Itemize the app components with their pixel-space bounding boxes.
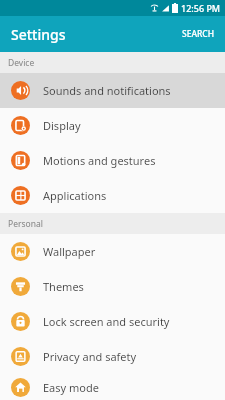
button[interactable]: Privacy and safety xyxy=(0,339,225,374)
button[interactable]: Wallpaper xyxy=(0,234,225,269)
button[interactable]: Easy mode xyxy=(0,374,225,400)
button[interactable]: Lock screen and security xyxy=(0,304,225,339)
staticText: Applications xyxy=(43,188,107,203)
staticText: Sounds and notifications xyxy=(43,83,171,98)
staticText: SEARCH xyxy=(182,28,215,40)
staticText: Lock screen and security xyxy=(43,314,170,329)
staticText: Device xyxy=(8,57,35,69)
button[interactable]: Display xyxy=(0,108,225,143)
staticText: Personal xyxy=(8,218,43,230)
button[interactable]: Motions and gestures xyxy=(0,143,225,178)
staticText: Easy mode xyxy=(43,380,99,395)
staticText: Motions and gestures xyxy=(43,153,156,168)
staticText: 12:56 PM xyxy=(181,2,221,14)
staticText: Settings xyxy=(11,25,66,44)
staticText: Privacy and safety xyxy=(43,349,137,364)
staticText: Display xyxy=(43,118,81,133)
button[interactable]: SEARCH xyxy=(172,21,225,47)
button[interactable]: Applications xyxy=(0,178,225,213)
button[interactable]: Themes xyxy=(0,269,225,304)
staticText: Wallpaper xyxy=(43,244,96,259)
staticText: Themes xyxy=(43,279,84,294)
button[interactable]: Sounds and notifications xyxy=(0,73,225,108)
